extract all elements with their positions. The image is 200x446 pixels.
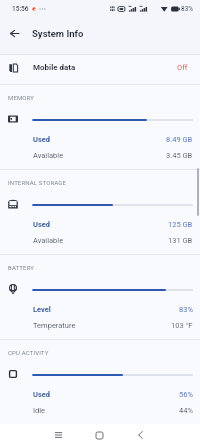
button[interactable]: Back	[6, 25, 23, 42]
staticText: Mobile data	[33, 63, 76, 72]
staticText: CPU ACTIVITY	[8, 349, 49, 356]
staticText: BATTERY	[8, 264, 35, 271]
button[interactable]: Mobile data	[0, 55, 200, 84]
staticText: Available	[33, 236, 64, 245]
staticText: Used	[33, 390, 51, 399]
button[interactable]: Back	[126, 424, 154, 446]
staticText: MEMORY	[8, 94, 35, 101]
staticText: Available	[33, 151, 64, 160]
staticText: Idle	[33, 406, 46, 415]
staticText: 3.45 GB	[166, 151, 193, 160]
staticText: 131 GB	[168, 236, 193, 245]
staticText: 125 GB	[168, 220, 193, 229]
staticText: Temperature	[33, 321, 76, 330]
staticText: Used	[33, 220, 51, 229]
staticText: Level	[33, 305, 51, 314]
staticText: 44%	[179, 406, 193, 415]
staticText: 15:56	[12, 5, 29, 13]
staticText: 8.49 GB	[166, 135, 193, 144]
button[interactable]: Home	[85, 424, 113, 446]
staticText: INTERNAL STORAGE	[8, 179, 67, 186]
staticText: 103 °F	[171, 321, 193, 330]
staticText: System Info	[32, 28, 84, 39]
staticText: 56%	[179, 390, 193, 399]
staticText: 83%	[179, 305, 193, 314]
staticText: 83%	[181, 5, 194, 13]
staticText: Off	[177, 63, 188, 72]
staticText: Used	[33, 135, 51, 144]
button[interactable]: Recents	[44, 424, 72, 446]
